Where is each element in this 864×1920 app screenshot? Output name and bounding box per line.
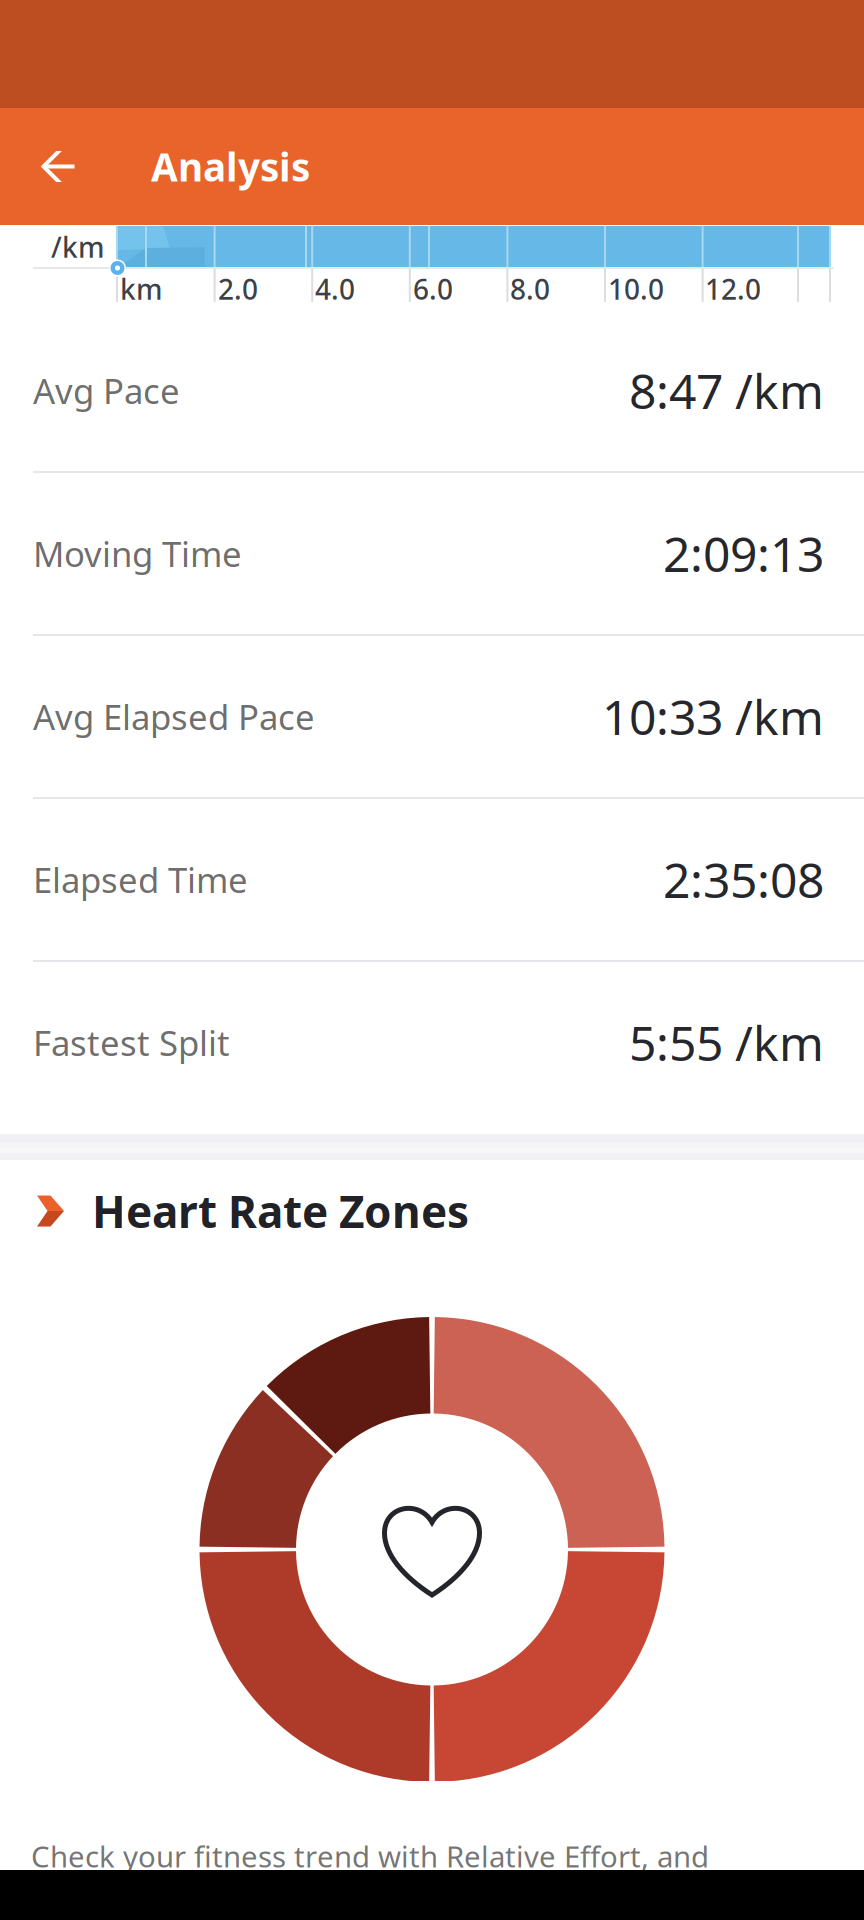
staticText: Check your fitness trend with Relative E… xyxy=(31,1836,709,1875)
staticText: 5:55 /km xyxy=(629,1011,824,1074)
button[interactable]: Heart Rate Zones xyxy=(0,1160,864,1317)
staticText: /km xyxy=(51,228,105,266)
staticText: Avg Pace xyxy=(33,367,180,413)
button[interactable]: Elapsed Time xyxy=(0,799,864,962)
staticText: Elapsed Time xyxy=(33,856,248,902)
staticText: 12.0 xyxy=(705,270,761,308)
staticText: Avg Elapsed Pace xyxy=(33,693,315,739)
staticText: Heart Rate Zones xyxy=(92,1182,469,1240)
staticText: 10.0 xyxy=(608,270,664,308)
staticText: Moving Time xyxy=(33,530,242,576)
staticText: 4.0 xyxy=(315,270,355,308)
button[interactable]: Avg Pace xyxy=(0,310,864,473)
button[interactable]: Moving Time xyxy=(0,473,864,636)
staticText: km xyxy=(120,270,163,308)
button[interactable]: Back xyxy=(0,108,118,225)
staticText: 2.0 xyxy=(218,270,258,308)
staticText: Fastest Split xyxy=(33,1019,230,1065)
staticText: 2:35:08 xyxy=(663,848,824,911)
staticText: 8:47 /km xyxy=(629,359,824,422)
staticText: Analysis xyxy=(151,141,310,192)
staticText: 8.0 xyxy=(510,270,550,308)
staticText: 2:09:13 xyxy=(663,522,824,585)
button[interactable]: Avg Elapsed Pace xyxy=(0,636,864,799)
button[interactable]: Fastest Split xyxy=(0,962,864,1134)
staticText: 10:33 /km xyxy=(602,685,824,748)
staticText: 6.0 xyxy=(413,270,453,308)
